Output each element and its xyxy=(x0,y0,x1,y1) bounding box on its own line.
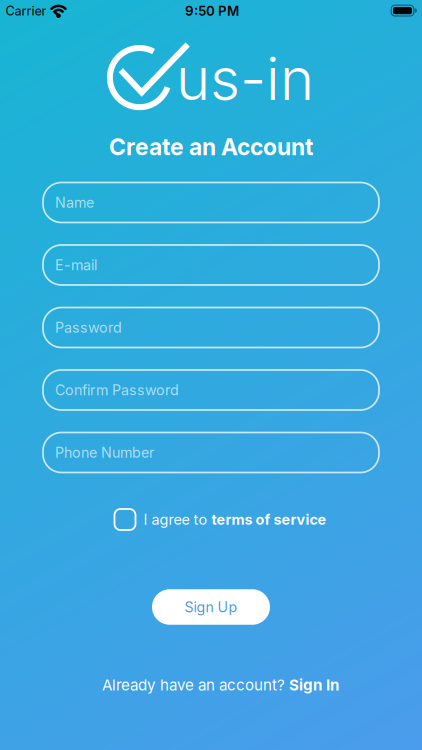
staticText: I agree to terms of service xyxy=(143,511,326,528)
staticText: Already have an account? Sign In xyxy=(102,676,339,694)
staticText: Sign Up xyxy=(184,598,237,615)
button[interactable]: I agree to terms of service xyxy=(114,509,326,530)
staticText: Confirm Password xyxy=(55,381,179,399)
staticText: E-mail xyxy=(55,256,97,274)
staticText: Password xyxy=(55,319,122,336)
staticText: us-in xyxy=(176,44,314,114)
staticText: Carrier xyxy=(5,3,46,18)
staticText: Create an Account xyxy=(109,133,313,161)
staticText: Phone Number xyxy=(55,444,154,461)
staticText: 9:50 PM xyxy=(185,3,239,19)
button[interactable]: Already have an account? Sign In xyxy=(102,676,339,694)
button[interactable]: Sign Up xyxy=(152,589,270,625)
staticText: Name xyxy=(55,194,94,211)
